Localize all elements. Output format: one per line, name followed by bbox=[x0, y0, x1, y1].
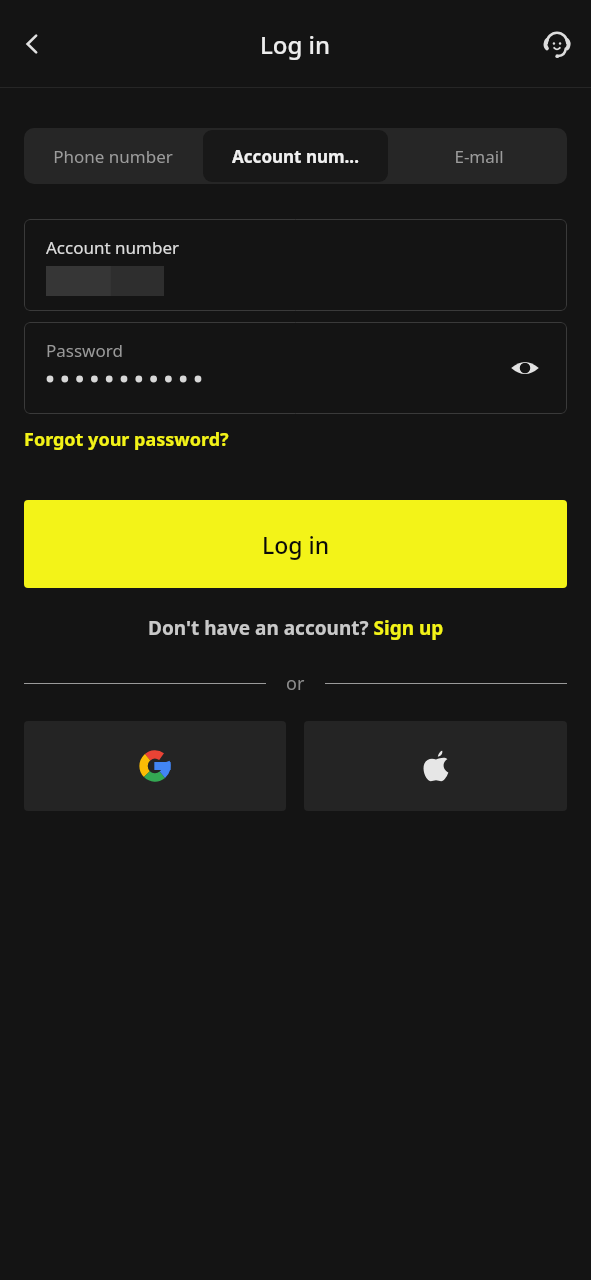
button[interactable]: Back bbox=[8, 20, 56, 68]
staticText: Log in bbox=[260, 28, 331, 61]
button[interactable]: Support bbox=[533, 20, 581, 68]
button[interactable]: Account num... bbox=[203, 130, 388, 182]
staticText: Log in bbox=[262, 529, 330, 560]
staticText: Password bbox=[46, 339, 123, 362]
button[interactable]: Account number bbox=[24, 219, 567, 311]
button[interactable]: Log in bbox=[24, 500, 567, 588]
button[interactable]: Don't have an account? Sign up bbox=[148, 615, 444, 641]
staticText: Don't have an account? Sign up bbox=[148, 615, 444, 641]
staticText: Account num... bbox=[232, 145, 359, 168]
button[interactable]: Password bbox=[24, 322, 567, 414]
button[interactable]: E-mail bbox=[392, 130, 565, 182]
staticText: Account number bbox=[46, 236, 180, 259]
button[interactable]: Phone number bbox=[26, 130, 199, 182]
staticText: or bbox=[286, 671, 305, 696]
button[interactable]: Show password bbox=[503, 346, 547, 390]
button[interactable]: Forgot your password? bbox=[24, 427, 229, 452]
staticText: Phone number bbox=[53, 145, 173, 168]
staticText: Forgot your password? bbox=[24, 427, 229, 452]
button[interactable]: Sign in with Apple bbox=[304, 721, 567, 811]
button[interactable]: Sign in with Google bbox=[24, 721, 286, 811]
staticText: E-mail bbox=[454, 145, 504, 168]
